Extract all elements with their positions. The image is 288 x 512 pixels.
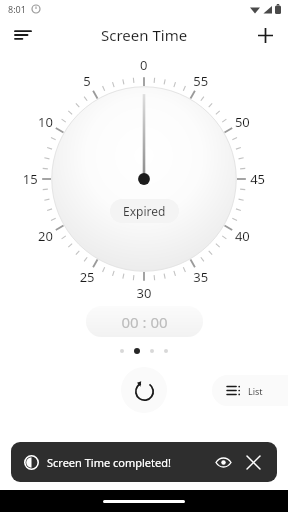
button[interactable]: Expired	[110, 199, 179, 223]
button[interactable]: 00 : 00	[86, 306, 203, 337]
staticText: 00 : 00	[121, 312, 168, 332]
button[interactable]: List	[212, 375, 288, 406]
button[interactable]: Sort	[6, 18, 40, 52]
button[interactable]: Screen Time completed!	[11, 442, 277, 482]
staticText: Screen Time	[101, 25, 188, 45]
button[interactable]: Reset	[121, 367, 167, 413]
button[interactable]: Add timer	[248, 18, 282, 52]
button[interactable]: Dismiss	[239, 448, 267, 476]
staticText: List	[248, 385, 263, 397]
button[interactable]: Timer dial	[21, 56, 267, 302]
staticText: Expired	[123, 203, 166, 219]
staticText: Screen Time completed!	[47, 455, 171, 470]
staticText: 8:01	[8, 3, 26, 15]
button[interactable]: Show	[209, 448, 237, 476]
